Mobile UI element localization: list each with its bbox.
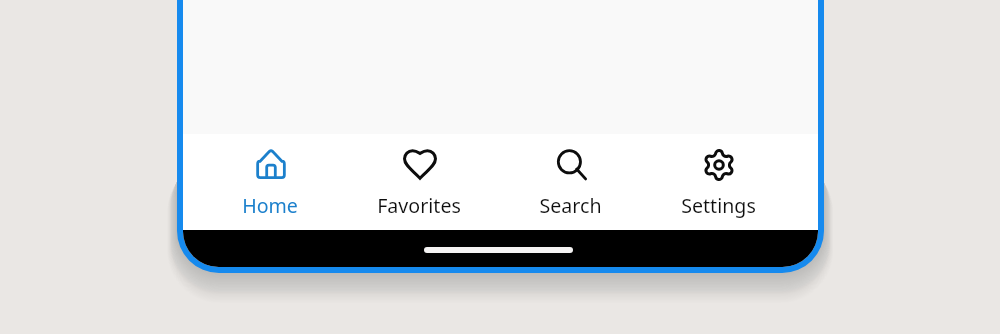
button[interactable]: Favorites <box>345 134 495 230</box>
staticText: Search <box>539 192 602 219</box>
staticText: Favorites <box>377 192 461 219</box>
button[interactable]: Settings <box>644 134 794 230</box>
staticText: Settings <box>681 192 756 219</box>
button[interactable]: Search <box>496 134 646 230</box>
staticText: Home <box>242 192 298 219</box>
button[interactable]: Home <box>196 134 346 230</box>
